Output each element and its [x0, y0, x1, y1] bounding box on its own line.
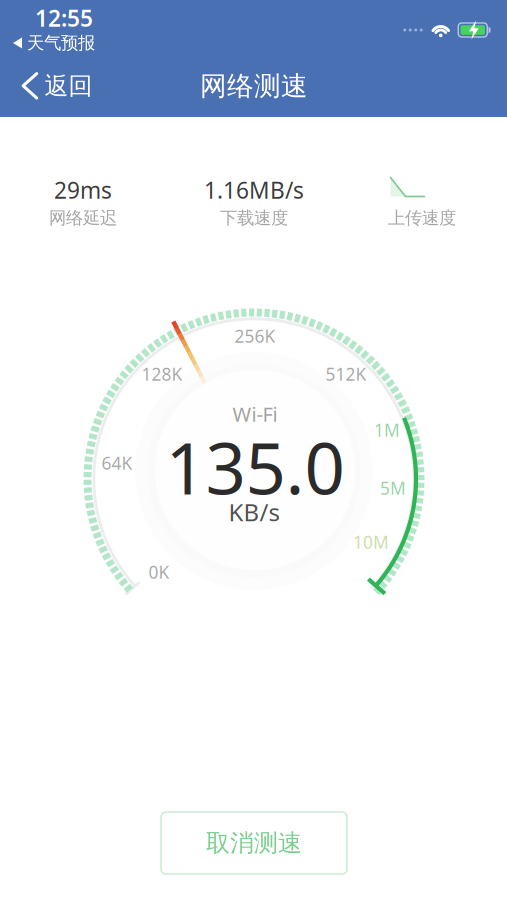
staticText: 0K: [148, 560, 169, 583]
staticText: Wi-Fi: [232, 401, 277, 427]
staticText: KB/s: [228, 496, 279, 528]
staticText: 10M: [353, 530, 389, 553]
staticText: 上传速度: [388, 207, 456, 229]
staticText: 256K: [234, 324, 275, 347]
staticText: 512K: [325, 362, 366, 385]
staticText: 64K: [101, 451, 132, 474]
staticText: 1.16MB/s: [204, 175, 304, 205]
staticText: 取消测速: [206, 828, 302, 858]
staticText: 128K: [141, 362, 182, 385]
staticText: 12:55: [35, 3, 93, 33]
button[interactable]: 返回: [5, 59, 108, 113]
staticText: 135.0: [165, 420, 344, 514]
staticText: 网络延迟: [49, 207, 117, 229]
staticText: 1M: [374, 418, 400, 441]
staticText: 29ms: [54, 175, 112, 205]
staticText: 网络测速: [200, 70, 308, 102]
staticText: 5M: [380, 476, 406, 499]
staticText: 返回: [44, 71, 92, 101]
staticText: 天气预报: [27, 32, 95, 54]
staticText: 下载速度: [220, 207, 288, 229]
button[interactable]: 取消测速: [161, 812, 347, 874]
